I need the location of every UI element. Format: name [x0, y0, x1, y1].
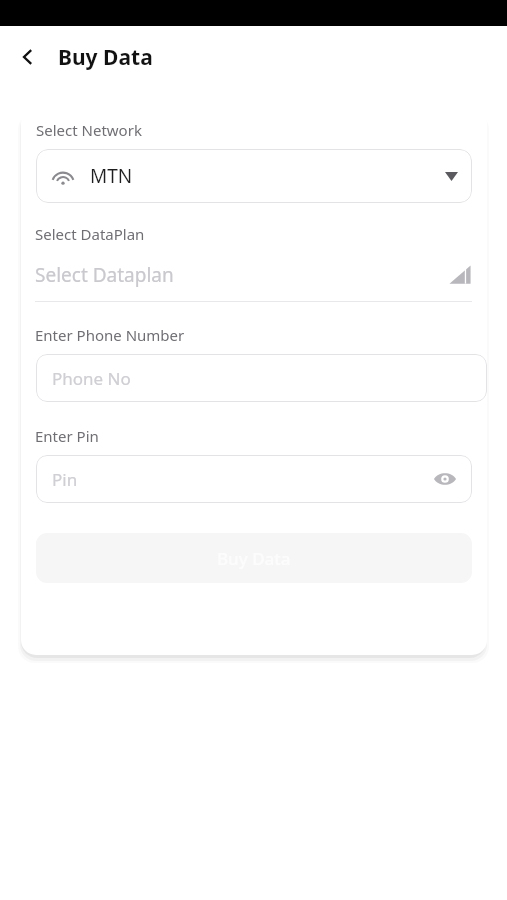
staticText: MTN [90, 163, 133, 189]
staticText: Buy Data [58, 43, 153, 72]
button[interactable]: Show PIN [432, 466, 458, 492]
staticText: Phone No [52, 367, 131, 390]
staticText: Select DataPlan [35, 224, 145, 244]
button[interactable]: Back [8, 37, 48, 77]
staticText: Select Dataplan [35, 262, 174, 288]
button[interactable]: Phone No [36, 354, 487, 402]
staticText: Pin [52, 468, 78, 491]
button[interactable]: MTN [36, 149, 472, 203]
staticText: Select Network [36, 120, 142, 140]
button[interactable]: Select Dataplan [35, 262, 472, 302]
staticText: Enter Pin [35, 426, 99, 446]
staticText: Enter Phone Number [35, 325, 185, 345]
button[interactable]: Pin [36, 455, 472, 503]
